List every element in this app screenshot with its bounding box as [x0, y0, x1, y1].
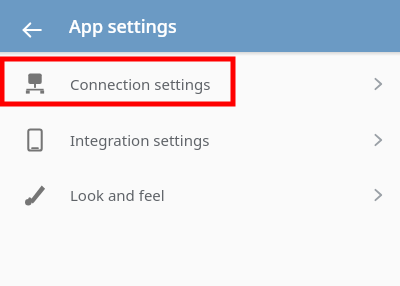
staticText: Look and feel — [70, 185, 356, 205]
staticText: Integration settings — [70, 130, 356, 150]
button[interactable]: Back — [14, 12, 50, 48]
button[interactable]: Look and feel — [0, 167, 400, 222]
staticText: Connection settings — [70, 74, 356, 94]
button[interactable]: Connection settings — [0, 56, 400, 112]
staticText: App settings — [69, 14, 177, 39]
button[interactable]: Integration settings — [0, 112, 400, 167]
